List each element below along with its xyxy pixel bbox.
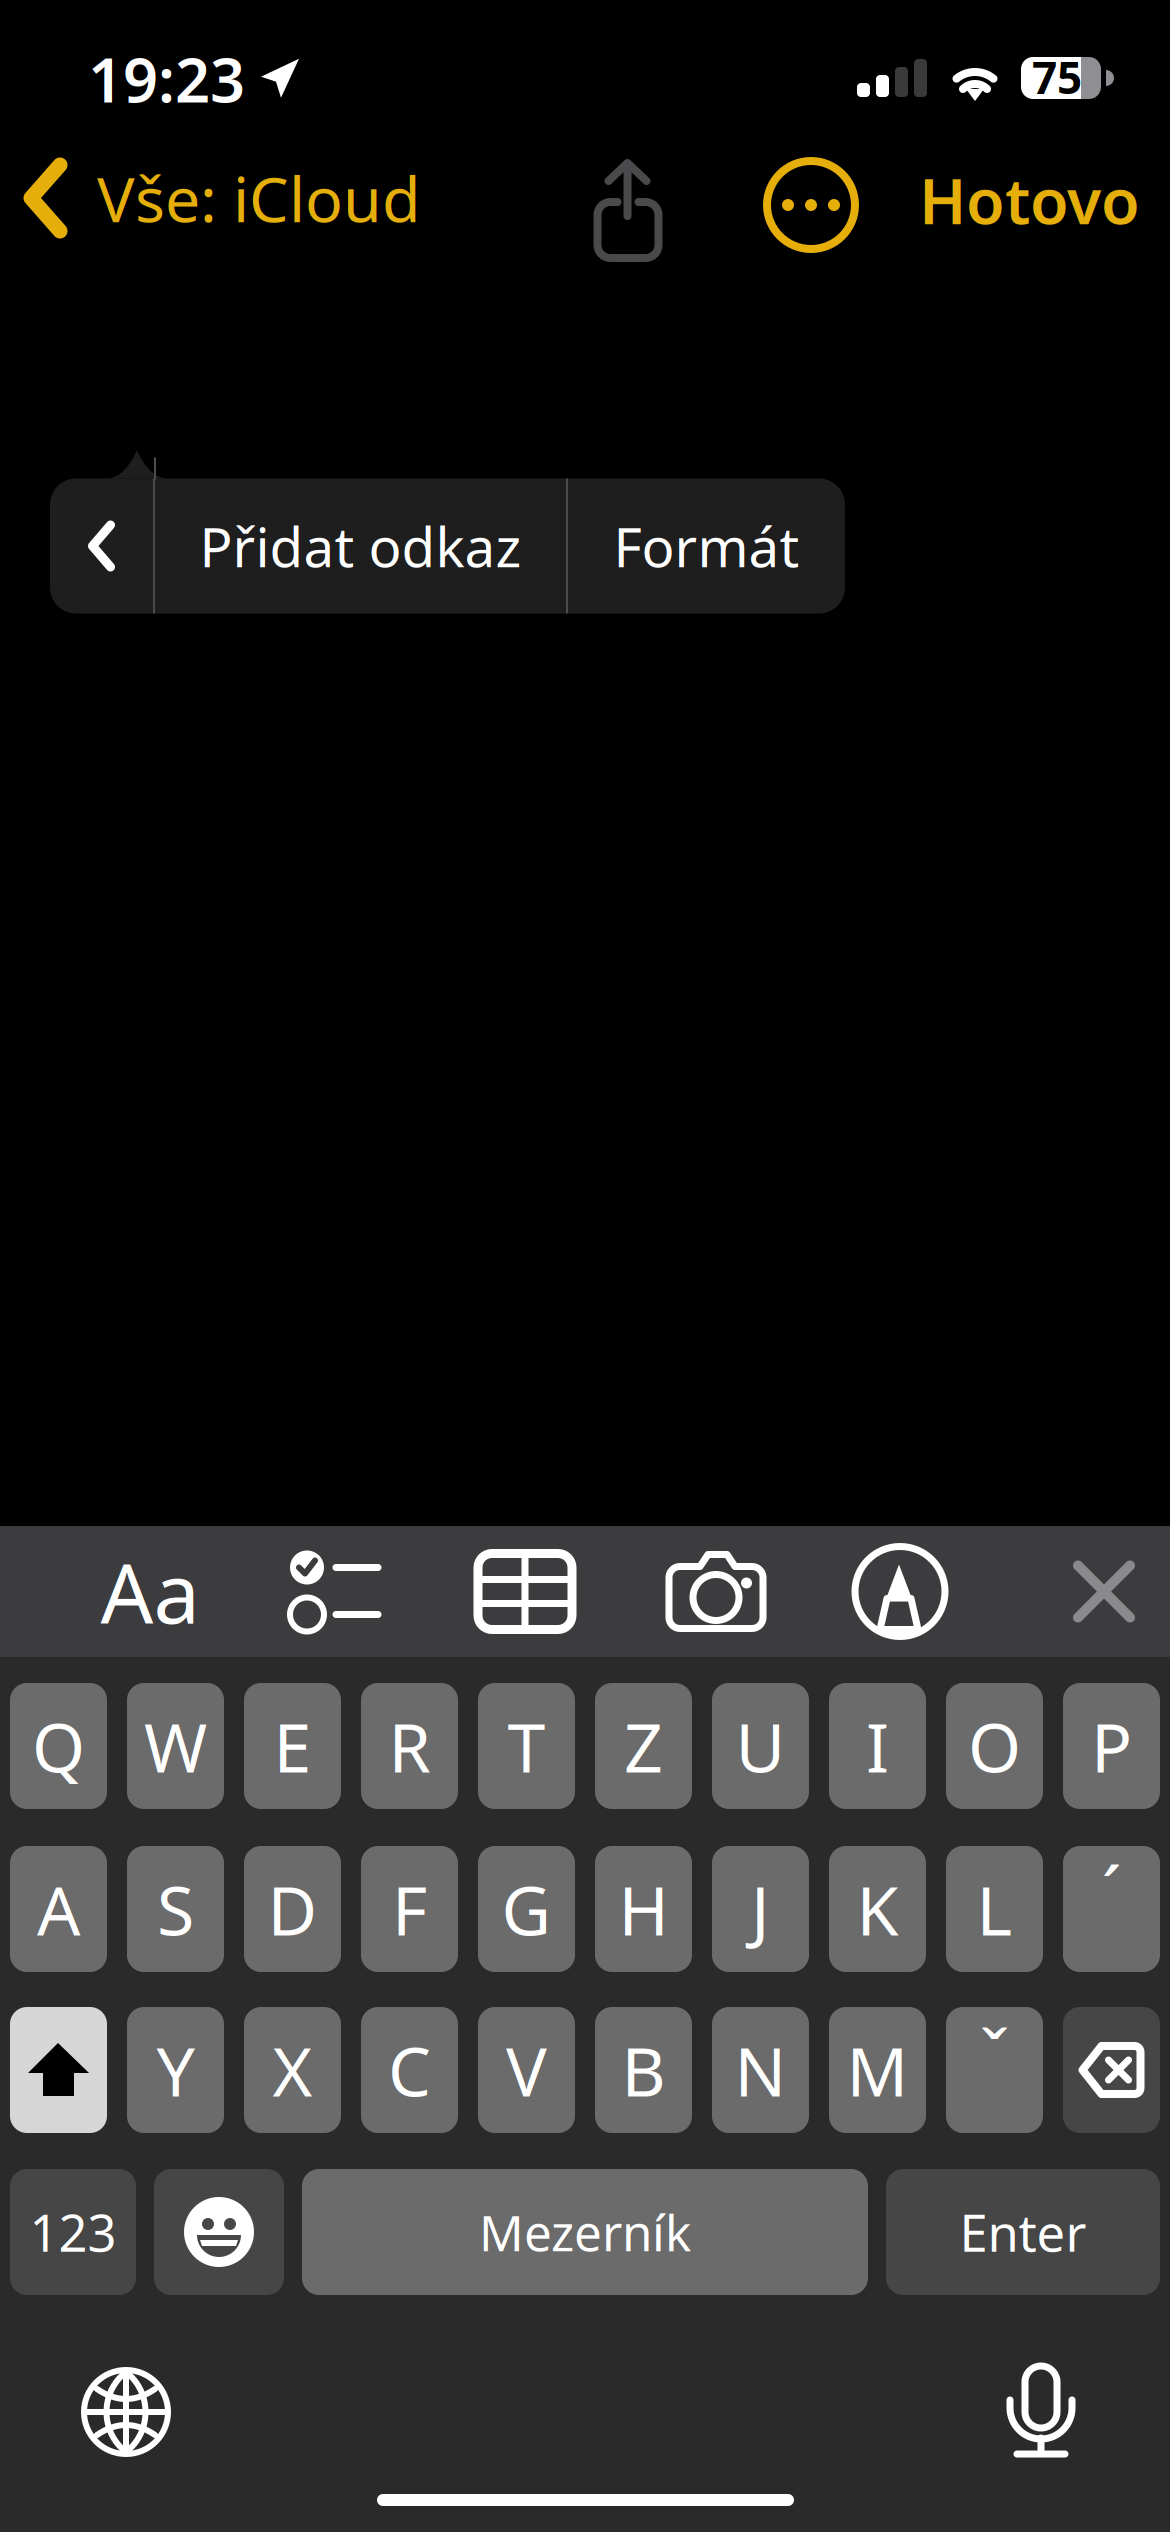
- staticText: H: [618, 1864, 668, 1954]
- staticText: Enter: [959, 2198, 1086, 2266]
- staticText: M: [846, 2025, 908, 2115]
- button[interactable]: A: [10, 1846, 107, 1972]
- staticText: J: [751, 1864, 770, 1954]
- button[interactable]: Close keyboard: [1039, 1526, 1169, 1657]
- staticText: Vše: iCloud: [97, 156, 421, 240]
- staticText: N: [734, 2025, 786, 2115]
- button[interactable]: Markup: [825, 1526, 975, 1657]
- staticText: 75: [1032, 48, 1082, 106]
- button[interactable]: L: [946, 1846, 1043, 1972]
- button[interactable]: Y: [127, 2007, 224, 2133]
- button[interactable]: ´: [1063, 1846, 1160, 1972]
- staticText: L: [976, 1864, 1012, 1954]
- staticText: B: [621, 2025, 665, 2115]
- staticText: U: [735, 1701, 785, 1791]
- button[interactable]: I: [829, 1683, 926, 1809]
- staticText: D: [267, 1864, 317, 1954]
- staticText: I: [866, 1701, 889, 1791]
- button[interactable]: J: [712, 1846, 809, 1972]
- button[interactable]: Previous: [50, 478, 153, 613]
- button[interactable]: V: [478, 2007, 575, 2133]
- staticText: F: [392, 1864, 427, 1954]
- button[interactable]: ˇ: [946, 2007, 1043, 2133]
- button[interactable]: Z: [595, 1683, 692, 1809]
- staticText: O: [968, 1701, 1021, 1791]
- button[interactable]: N: [712, 2007, 809, 2133]
- staticText: A: [37, 1864, 80, 1954]
- staticText: ´: [1101, 1843, 1121, 1939]
- button[interactable]: K: [829, 1846, 926, 1972]
- button[interactable]: G: [478, 1846, 575, 1972]
- button[interactable]: H: [595, 1846, 692, 1972]
- staticText: G: [501, 1864, 551, 1954]
- button[interactable]: O: [946, 1683, 1043, 1809]
- button[interactable]: M: [829, 2007, 926, 2133]
- button[interactable]: P: [1063, 1683, 1160, 1809]
- staticText: W: [144, 1701, 207, 1791]
- button[interactable]: Text formatting: [75, 1526, 225, 1657]
- button[interactable]: Switch keyboard: [66, 2357, 186, 2467]
- staticText: Aa: [100, 1537, 199, 1646]
- button[interactable]: Hotovo: [919, 152, 1149, 248]
- button[interactable]: Backspace: [1063, 2007, 1160, 2133]
- staticText: 19:23: [88, 38, 245, 119]
- staticText: Y: [156, 2025, 194, 2115]
- staticText: Q: [32, 1701, 85, 1791]
- staticText: K: [856, 1864, 898, 1954]
- button[interactable]: F: [361, 1846, 458, 1972]
- staticText: C: [388, 2025, 431, 2115]
- button[interactable]: U: [712, 1683, 809, 1809]
- staticText: Z: [624, 1701, 663, 1791]
- button[interactable]: Dictation: [981, 2357, 1101, 2467]
- staticText: P: [1091, 1701, 1132, 1791]
- button[interactable]: Camera: [642, 1526, 792, 1657]
- button[interactable]: Emoji keyboard: [154, 2169, 284, 2295]
- button[interactable]: R: [361, 1683, 458, 1809]
- button[interactable]: E: [244, 1683, 341, 1809]
- staticText: S: [157, 1864, 194, 1954]
- button[interactable]: C: [361, 2007, 458, 2133]
- staticText: X: [272, 2025, 312, 2115]
- button[interactable]: W: [127, 1683, 224, 1809]
- button[interactable]: More options: [761, 150, 861, 260]
- staticText: T: [507, 1701, 545, 1791]
- button[interactable]: B: [595, 2007, 692, 2133]
- button[interactable]: Q: [10, 1683, 107, 1809]
- staticText: V: [506, 2025, 547, 2115]
- staticText: Přidat odkaz: [199, 510, 521, 582]
- button[interactable]: Checklist: [260, 1526, 410, 1657]
- staticText: E: [273, 1701, 311, 1791]
- button[interactable]: T: [478, 1683, 575, 1809]
- button[interactable]: X: [244, 2007, 341, 2133]
- staticText: Mezerník: [479, 2199, 691, 2265]
- staticText: R: [388, 1701, 430, 1791]
- button[interactable]: Shift: [10, 2007, 107, 2133]
- button[interactable]: Vše: iCloud: [0, 150, 460, 246]
- button[interactable]: Formát: [568, 478, 845, 613]
- staticText: Hotovo: [919, 158, 1140, 242]
- button[interactable]: S: [127, 1846, 224, 1972]
- button[interactable]: Share: [578, 146, 678, 256]
- staticText: Formát: [613, 510, 799, 582]
- button[interactable]: Enter: [886, 2169, 1160, 2295]
- button[interactable]: Přidat odkaz: [155, 478, 566, 613]
- button[interactable]: 123: [10, 2169, 136, 2295]
- button[interactable]: D: [244, 1846, 341, 1972]
- button[interactable]: Table: [450, 1526, 600, 1657]
- button[interactable]: Mezerník: [302, 2169, 868, 2295]
- staticText: ˇ: [979, 2006, 1009, 2102]
- staticText: 123: [29, 2198, 116, 2266]
